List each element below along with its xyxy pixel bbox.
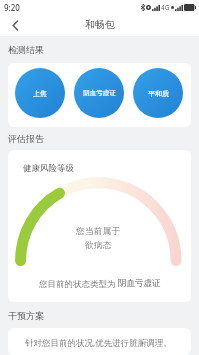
staticText: 阴血亏虚证 [83,89,116,97]
staticText: 阴血亏虚证 [118,278,161,289]
staticText: 证型 [94,90,104,96]
staticText: 体质 [153,90,163,96]
staticText: 和畅包 [85,18,115,31]
button[interactable]: Back [0,15,30,36]
staticText: 检测结果 [8,44,44,55]
staticText: 4G [161,3,170,12]
staticText: 健康风险等级 [23,163,74,174]
button[interactable]: 平和质 [133,68,183,118]
staticText: 欲病态 [85,240,112,251]
button[interactable]: 阴血亏虚证 [74,68,124,118]
staticText: 上焦 [33,89,47,98]
button[interactable]: 上焦 [15,68,65,118]
staticText: 评估报告 [8,133,44,144]
staticText: 平和质 [148,89,169,98]
staticText: 9:20 [4,2,20,13]
staticText: 干预方案 [8,310,44,321]
staticText: 您目前的状态类型为 [39,278,118,290]
staticText: 针对您目前的状况,优先进行脏腑调理。 [25,337,172,349]
staticText: 部位 [35,90,45,96]
staticText: 您当前属于 [76,226,121,237]
